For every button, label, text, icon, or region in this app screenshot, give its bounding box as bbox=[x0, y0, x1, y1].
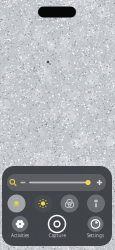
button[interactable]: Flashlight bbox=[87, 194, 105, 212]
button[interactable]: Capture bbox=[39, 215, 75, 241]
button[interactable]: Brightness bbox=[34, 194, 52, 212]
button[interactable]: Brightness bbox=[7, 194, 25, 212]
button[interactable]: Filters bbox=[60, 194, 78, 212]
button[interactable]: Zoom bbox=[7, 174, 106, 191]
button[interactable]: Activities bbox=[2, 215, 38, 241]
button[interactable]: Settings bbox=[77, 215, 113, 241]
staticText: Settings bbox=[87, 232, 104, 238]
staticText: Activities bbox=[11, 232, 29, 238]
staticText: Capture bbox=[48, 232, 65, 238]
